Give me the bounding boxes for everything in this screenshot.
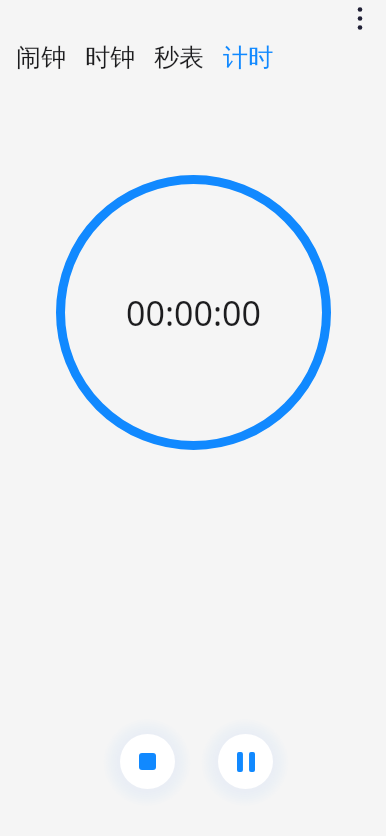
staticText: 时钟 <box>85 42 135 73</box>
staticText: 计时 <box>223 42 273 73</box>
button[interactable]: 00:00:00 <box>56 175 331 450</box>
button[interactable]: 闹钟 <box>16 42 66 73</box>
button[interactable]: More options <box>344 0 376 32</box>
button[interactable]: 秒表 <box>154 42 204 73</box>
button[interactable]: 计时 <box>223 42 273 73</box>
button[interactable]: Stop <box>120 734 175 789</box>
staticText: 闹钟 <box>16 42 66 73</box>
button[interactable]: Pause <box>218 734 273 789</box>
button[interactable]: 时钟 <box>85 42 135 73</box>
staticText: 秒表 <box>154 42 204 73</box>
staticText: 00:00:00 <box>126 290 261 336</box>
